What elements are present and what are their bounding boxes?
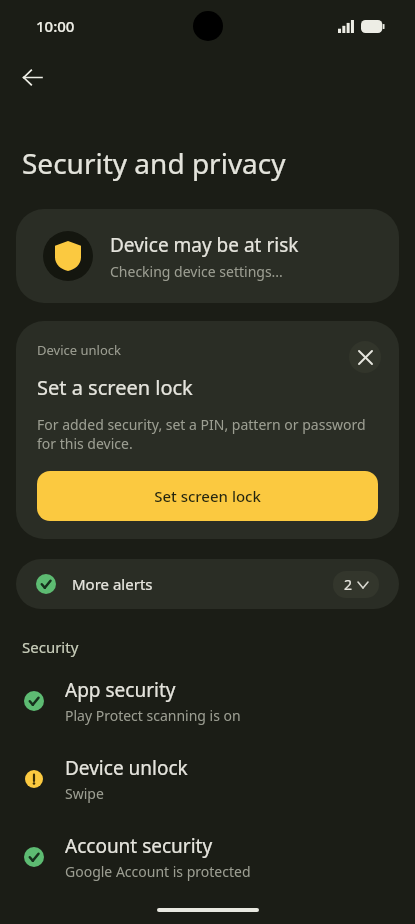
- staticText: 2: [344, 575, 353, 594]
- staticText: Security: [22, 637, 79, 657]
- button[interactable]: Dismiss: [349, 341, 381, 373]
- button[interactable]: Back: [10, 55, 54, 99]
- button[interactable]: Account security: [0, 831, 415, 883]
- staticText: More alerts: [72, 574, 153, 594]
- button[interactable]: Set screen lock: [37, 471, 378, 521]
- staticText: Google Account is protected: [65, 862, 251, 881]
- staticText: Swipe: [65, 784, 104, 803]
- button[interactable]: Device may be at risk: [16, 209, 399, 303]
- button[interactable]: More alerts: [16, 559, 399, 609]
- button[interactable]: Device unlock: [0, 753, 415, 805]
- staticText: Security and privacy: [22, 144, 286, 182]
- staticText: Play Protect scanning is on: [65, 706, 241, 725]
- staticText: Account security: [65, 833, 213, 859]
- staticText: 10:00: [36, 16, 75, 36]
- staticText: App security: [65, 677, 176, 703]
- button[interactable]: App security: [0, 675, 415, 727]
- staticText: Set screen lock: [154, 486, 261, 506]
- staticText: Device unlock: [65, 755, 188, 781]
- staticText: Device may be at risk: [110, 232, 299, 258]
- staticText: For added security, set a PIN, pattern o…: [37, 415, 378, 453]
- staticText: Set a screen lock: [37, 374, 193, 401]
- staticText: Checking device settings...: [110, 262, 283, 281]
- staticText: Device unlock: [37, 341, 121, 359]
